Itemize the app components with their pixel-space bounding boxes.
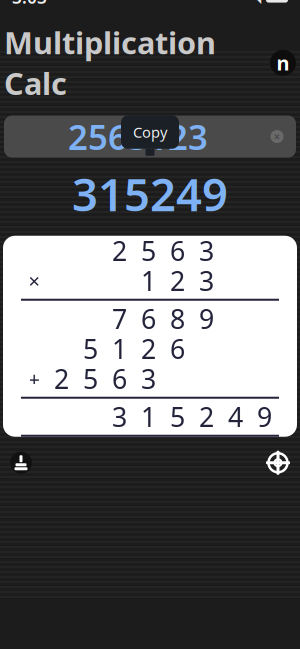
staticText: 5 [170, 399, 185, 434]
staticText [261, 233, 268, 268]
button[interactable]: About [270, 50, 296, 76]
staticText: 1 [141, 399, 156, 434]
staticText: 9 [257, 399, 272, 434]
staticText: 3 [199, 233, 214, 268]
staticText: 3 [199, 263, 214, 298]
staticText: 2 [54, 361, 69, 396]
staticText: Copy [133, 122, 167, 142]
staticText: 6 [112, 361, 127, 396]
staticText: 5 [83, 361, 98, 396]
staticText: × [273, 129, 280, 144]
staticText: 3 [141, 361, 156, 396]
staticText: 5 [141, 233, 156, 268]
staticText: 2 [141, 331, 156, 366]
staticText: 2 [112, 233, 127, 268]
staticText: 2 [199, 399, 214, 434]
button[interactable]: Clear [264, 123, 290, 149]
staticText: n [276, 49, 289, 76]
staticText: 315249 [72, 163, 228, 224]
button[interactable]: Save [2, 444, 40, 482]
staticText: 1 [141, 263, 156, 298]
staticText: 8 [170, 301, 185, 336]
staticText: 9 [199, 301, 214, 336]
staticText: 6 [170, 331, 185, 366]
staticText: × [28, 267, 39, 294]
staticText: ◥ [250, 0, 261, 5]
staticText: Multiplication Calc [4, 22, 216, 103]
button[interactable]: 2563 [4, 115, 296, 157]
staticText: 3:03 [12, 0, 47, 9]
staticText: 123 [148, 113, 208, 159]
staticText: 5 [83, 331, 98, 366]
staticText: 4 [228, 399, 243, 434]
staticText: 2563 [68, 113, 148, 159]
staticText: 3 [112, 399, 127, 434]
staticText: 6 [170, 233, 185, 268]
staticText: 6 [141, 301, 156, 336]
staticText: 7 [112, 301, 127, 336]
staticText: 1 [112, 331, 127, 366]
staticText [232, 233, 239, 268]
staticText: + [28, 365, 39, 392]
button[interactable]: Settings [258, 443, 298, 483]
button[interactable]: Copy [121, 115, 179, 149]
staticText: 2 [170, 263, 185, 298]
